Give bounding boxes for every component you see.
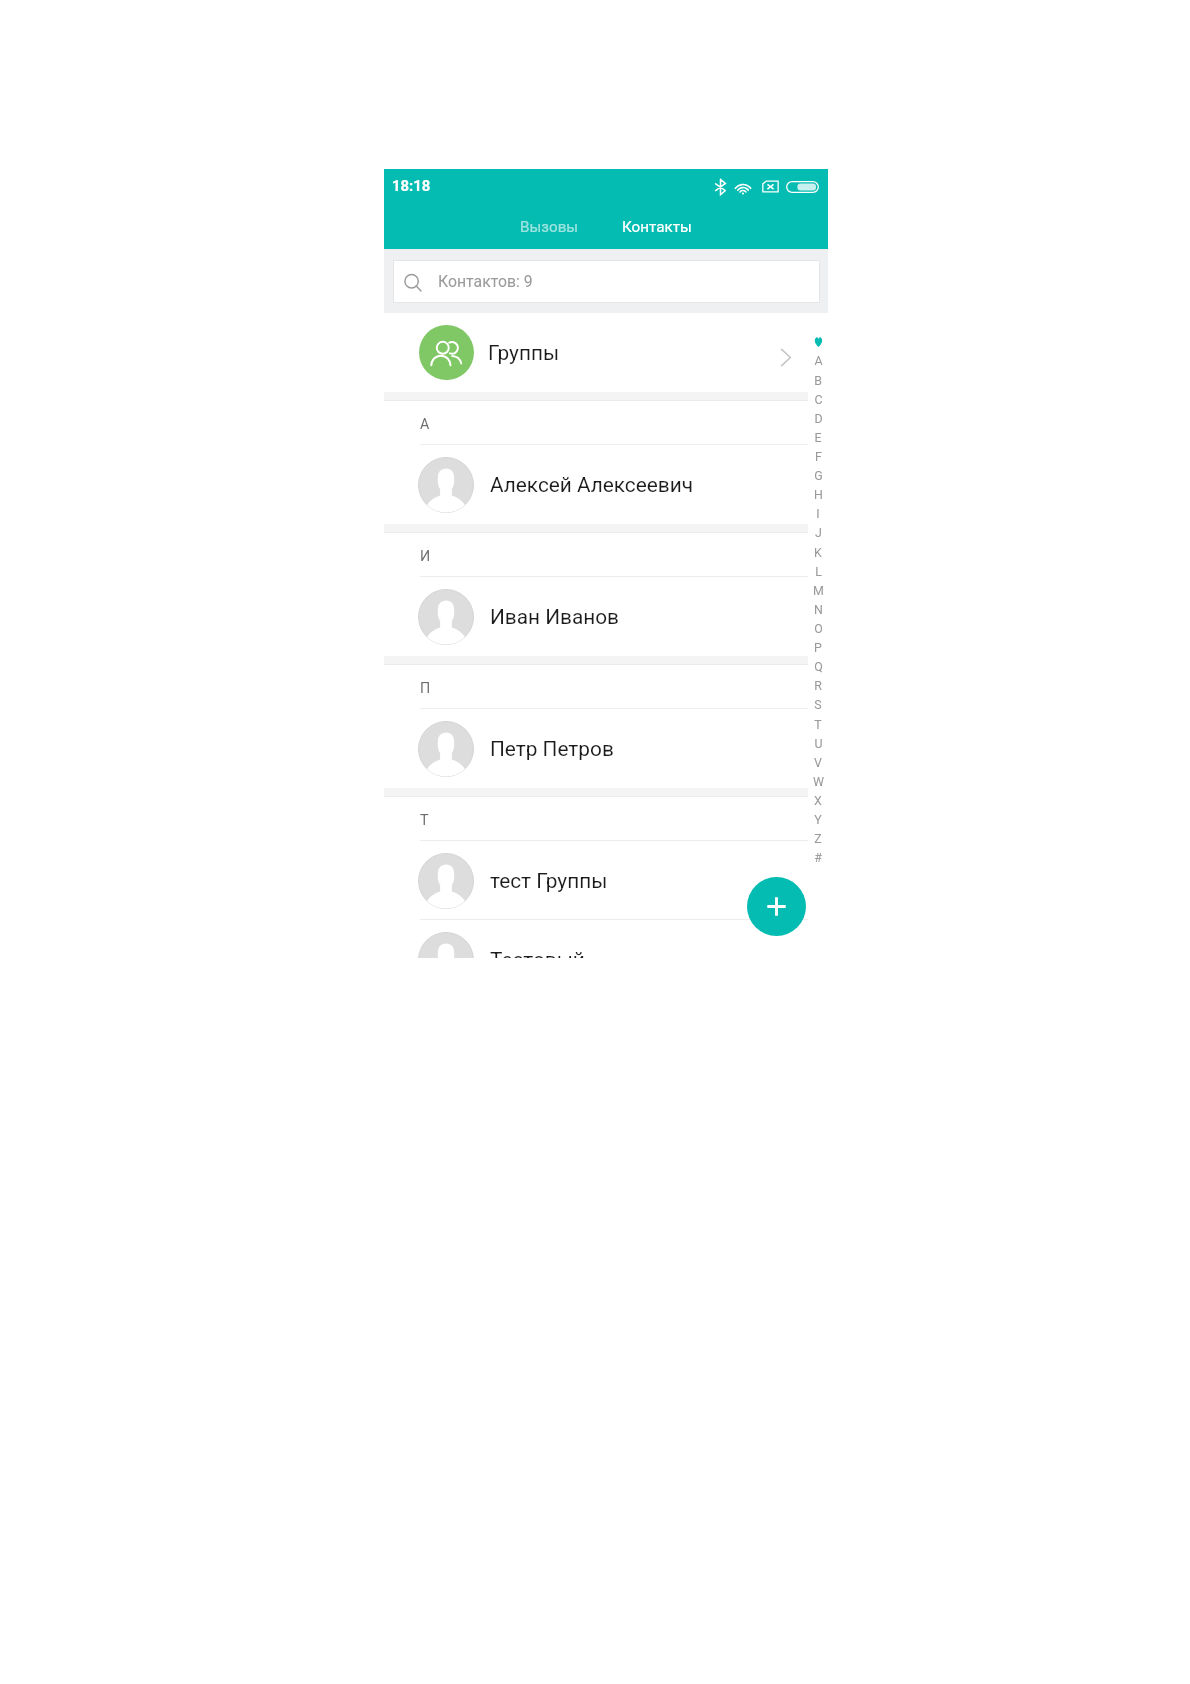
button[interactable]: Контакты — [606, 210, 708, 244]
staticText: R — [814, 678, 822, 693]
staticText: Алексей Алексеевич — [490, 473, 693, 497]
staticText: M — [813, 583, 824, 598]
staticText: Группы — [488, 341, 560, 365]
button[interactable]: Иван Иванов — [384, 577, 808, 656]
staticText: X — [814, 793, 822, 808]
staticText: Контактов: 9 — [438, 272, 533, 291]
staticText: Тестовый — [490, 948, 585, 958]
staticText: Иван Иванов — [490, 605, 619, 629]
button[interactable]: Вызовы — [500, 210, 598, 244]
staticText: W — [813, 774, 824, 789]
staticText: П — [420, 680, 431, 697]
staticText: L — [815, 564, 822, 579]
button[interactable]: тест Группы — [384, 841, 808, 920]
staticText: 18:18 — [392, 177, 431, 194]
staticText: Q — [814, 659, 823, 674]
staticText: # — [814, 850, 822, 865]
button[interactable]: Группы — [384, 313, 808, 392]
staticText: S — [814, 697, 822, 712]
staticText: D — [814, 411, 823, 426]
staticText: P — [814, 640, 822, 655]
button[interactable]: Алексей Алексеевич — [384, 445, 808, 524]
button[interactable]: Add contact — [747, 877, 806, 936]
staticText: J — [815, 525, 822, 540]
staticText: B — [814, 373, 822, 388]
staticText: A — [814, 353, 823, 368]
staticText: Вызовы — [520, 218, 579, 236]
staticText: Y — [814, 812, 822, 827]
staticText: H — [814, 487, 823, 502]
staticText: V — [814, 755, 822, 770]
button[interactable]: Петр Петров — [384, 709, 808, 788]
staticText: K — [814, 545, 822, 560]
staticText: тест Группы — [490, 869, 608, 893]
staticText: Контакты — [622, 218, 692, 236]
staticText: И — [420, 548, 431, 565]
staticText: Петр Петров — [490, 737, 614, 761]
staticText: C — [814, 392, 823, 407]
button[interactable]: Alphabet index — [808, 313, 828, 873]
staticText: T — [814, 717, 822, 732]
staticText: F — [815, 449, 822, 464]
button[interactable]: Контактов: 9 — [394, 261, 819, 302]
staticText: Т — [420, 812, 429, 829]
button[interactable]: Тестовый — [384, 920, 808, 958]
staticText: N — [814, 602, 823, 617]
staticText: G — [814, 468, 823, 483]
staticText: O — [814, 621, 823, 636]
staticText: I — [816, 506, 820, 521]
staticText: Z — [814, 831, 822, 846]
staticText: U — [814, 736, 823, 751]
staticText: E — [814, 430, 822, 445]
staticText: А — [420, 416, 430, 433]
